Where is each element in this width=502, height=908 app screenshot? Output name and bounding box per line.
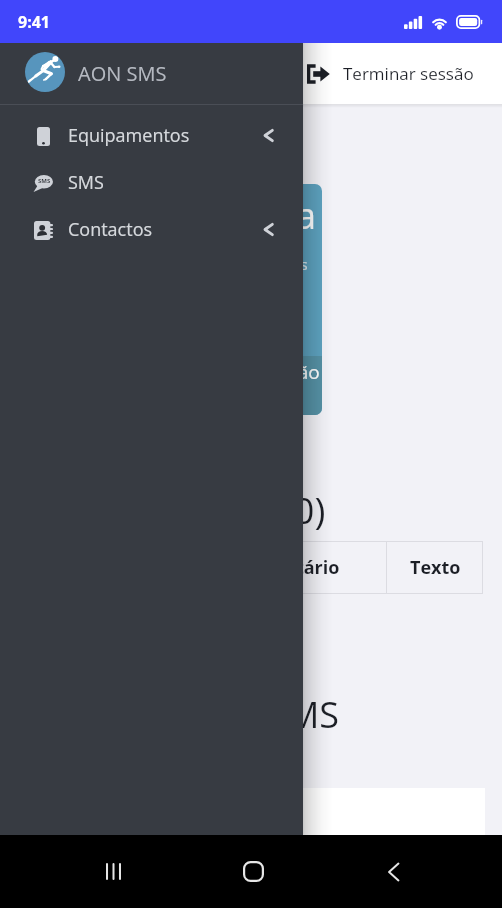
staticText: Saldo da conta <box>70 191 317 240</box>
staticText: Equipamentos <box>68 123 190 148</box>
staticText: Contactos <box>68 217 153 242</box>
button[interactable]: AON SMS <box>0 43 303 104</box>
staticText: Terminar sessão <box>343 62 474 85</box>
staticText: SMS <box>68 170 104 195</box>
button[interactable]: Back <box>373 835 413 908</box>
staticText: SMS <box>38 177 51 185</box>
staticText: Mais informação <box>172 359 320 385</box>
button[interactable]: Destinatário <box>180 541 386 594</box>
button[interactable]: Equipamentos <box>0 112 303 159</box>
button[interactable]: Recents <box>93 835 133 908</box>
staticText: Créditos disponíveis <box>167 254 308 274</box>
staticText: Contactos (0) <box>100 484 326 534</box>
button[interactable]: Texto <box>387 541 483 594</box>
button[interactable]: Contactos <box>0 206 303 253</box>
button[interactable]: Home <box>233 835 273 908</box>
button[interactable]: Saldo da conta <box>70 184 322 415</box>
staticText: AON SMS <box>78 60 167 87</box>
staticText: 9:41 <box>18 11 51 33</box>
button[interactable]: SMS <box>0 159 303 206</box>
other: Terminar sessão <box>306 64 330 84</box>
staticText: Texto <box>410 555 461 580</box>
staticText: Destinatário <box>227 555 340 580</box>
staticText: Enviar SMS <box>154 690 340 739</box>
button[interactable]: Terminar sessão <box>298 54 486 93</box>
